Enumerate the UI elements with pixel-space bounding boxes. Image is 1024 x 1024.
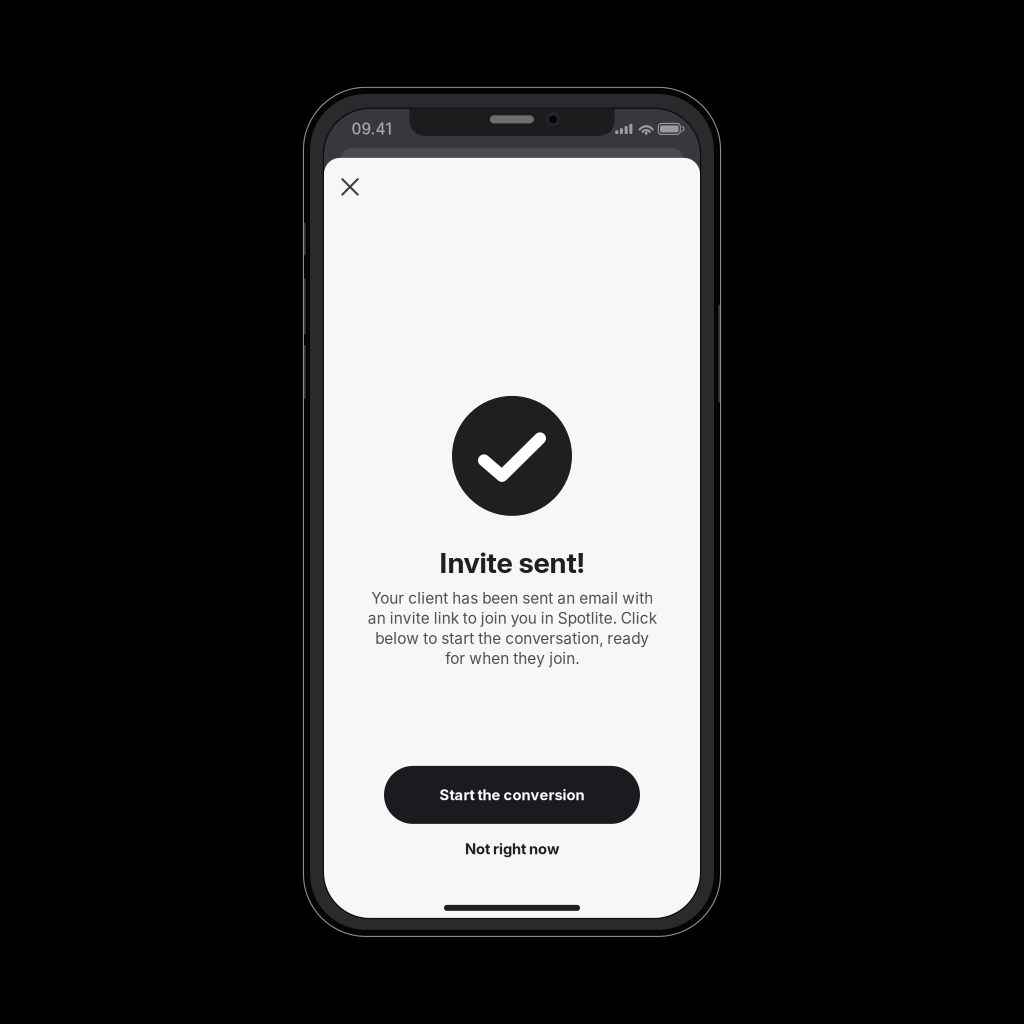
staticText: Invite sent! xyxy=(439,546,584,580)
button[interactable]: Close xyxy=(328,165,372,209)
staticText: Start the conversion xyxy=(439,786,584,804)
button[interactable]: Start the conversion xyxy=(384,766,640,824)
button[interactable]: Not right now xyxy=(422,831,602,867)
staticText: Your client has been sent an email with … xyxy=(367,589,656,668)
staticText: Not right now xyxy=(465,840,559,858)
staticText: 09.41 xyxy=(351,120,391,138)
